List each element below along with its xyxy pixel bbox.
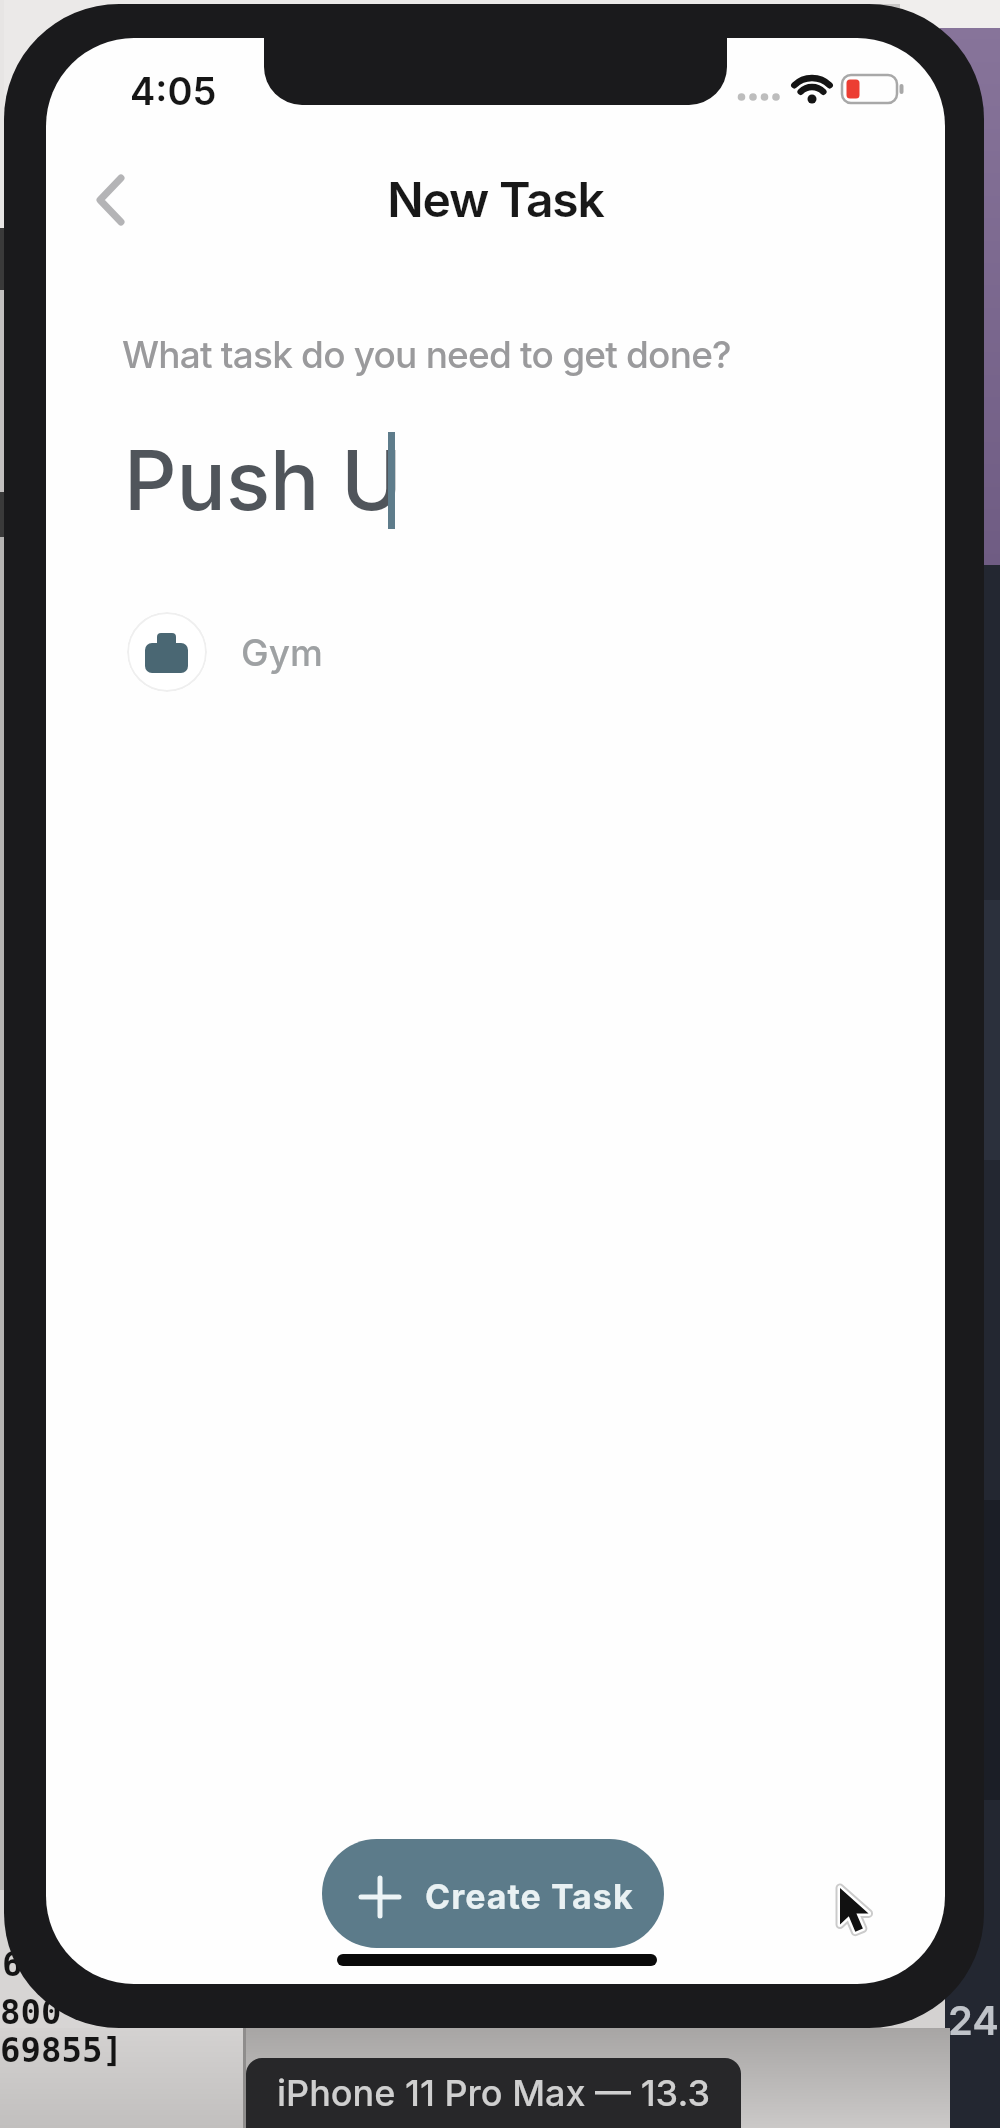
staticText: 4:05 <box>130 68 217 114</box>
staticText: New Task <box>46 170 945 228</box>
button[interactable]: Create Task <box>322 1839 664 1948</box>
staticText: Push U <box>124 431 402 530</box>
button[interactable] <box>80 160 138 240</box>
staticText: What task do you need to get done? <box>122 332 731 377</box>
staticText: 6, <box>2 1944 43 1984</box>
staticText: iPhone 11 Pro Max — 13.3 <box>277 2071 710 2115</box>
staticText: 800 <box>0 1992 62 2032</box>
staticText: Gym <box>241 630 323 675</box>
staticText: 69855] <box>0 2030 123 2070</box>
staticText: Create Task <box>425 1876 634 1917</box>
button[interactable]: Gym <box>127 612 323 692</box>
staticText: 24 <box>948 1996 999 2044</box>
